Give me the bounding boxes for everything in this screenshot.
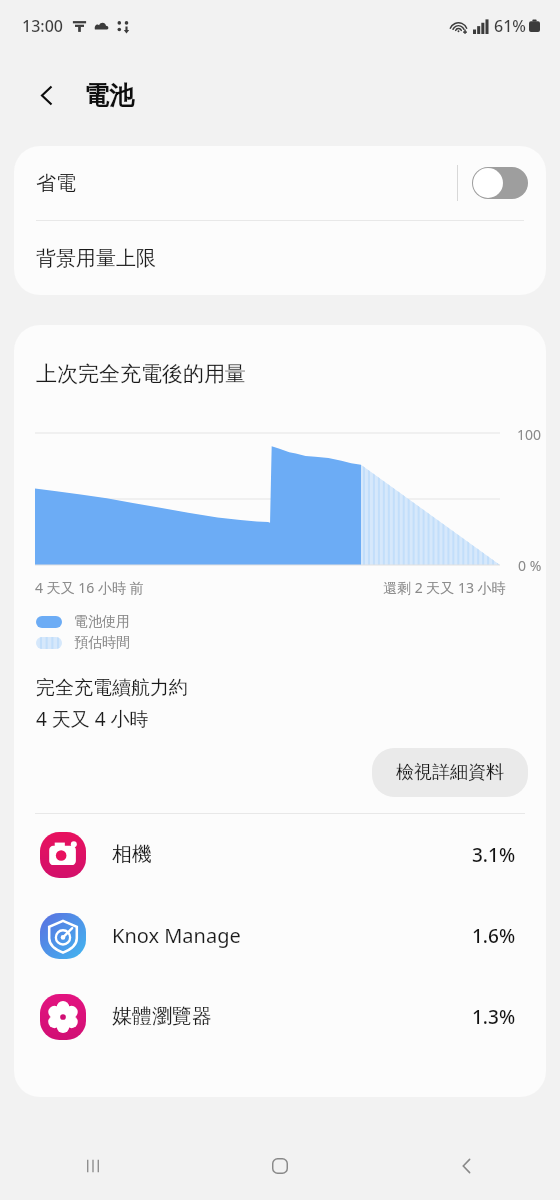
button[interactable]: 相機 [14,814,546,895]
staticText: 媒體瀏覽器 [112,1004,212,1029]
staticText: 電池 [84,80,134,111]
button[interactable]: Power saving toggle [472,167,528,199]
button[interactable]: Knox Manage [14,895,546,976]
staticText: 4 天又 4 小時 [36,706,149,732]
staticText: 省電 [36,171,76,196]
staticText: 上次完全充電後的用量 [36,361,246,387]
button[interactable]: Recents [0,1132,186,1200]
button[interactable]: 檢視詳細資料 [372,748,528,797]
button[interactable]: Home [186,1132,373,1200]
button[interactable]: 背景用量上限 [14,221,546,295]
staticText: 4 天又 16 小時 前 [35,578,144,597]
staticText: Knox Manage [112,922,241,949]
staticText: 電池使用 [74,613,130,631]
staticText: 0 % [518,556,542,575]
staticText: 檢視詳細資料 [396,761,504,784]
staticText: 完全充電續航力約 [36,676,188,700]
staticText: 1.6% [472,923,516,949]
staticText: 3.1% [472,842,516,868]
staticText: 61% [494,15,526,37]
staticText: 1.3% [472,1004,516,1030]
button[interactable]: 媒體瀏覽器 [14,976,546,1057]
staticText: 還剩 2 天又 13 小時 [383,578,506,597]
staticText: 100 [517,425,542,444]
button[interactable]: Back [24,72,70,118]
staticText: 背景用量上限 [36,246,156,271]
button[interactable]: 省電 [14,146,546,220]
staticText: 預估時間 [74,634,130,652]
button[interactable]: Back [373,1132,560,1200]
staticText: 相機 [112,842,152,867]
staticText: 13:00 [22,15,63,37]
